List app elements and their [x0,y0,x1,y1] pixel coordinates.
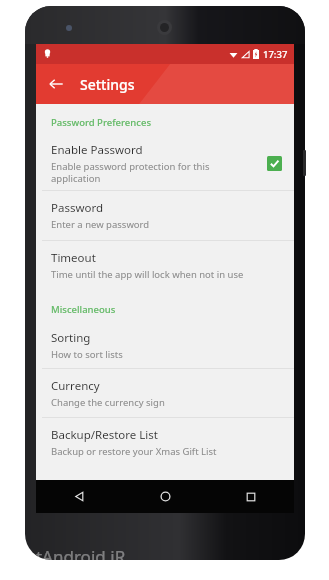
button[interactable]: Timeout [36,241,294,290]
staticText: Currency [51,378,100,394]
staticText: Sorting [51,330,91,346]
staticText: Backup or restore your Xmas Gift List [51,445,217,458]
button[interactable]: Currency [36,369,294,417]
button[interactable]: Recent apps [208,480,294,513]
button[interactable]: Password [36,191,294,240]
staticText: Settings [80,75,135,94]
staticText: GetAndroid.iR [14,545,126,568]
staticText: Change the currency sign [51,396,165,409]
staticText: Enable Password [51,142,143,158]
staticText: Enable password protection for this appl… [51,160,210,185]
button[interactable]: Backup/Restore List [36,418,294,466]
staticText: Timeout [51,250,96,266]
button[interactable]: Home [122,480,208,513]
staticText: Miscellaneous [51,303,116,316]
staticText: Enter a new password [51,218,150,231]
button[interactable]: Enable Password [36,136,294,190]
staticText: How to sort lists [51,348,123,361]
staticText: Password Preferences [51,116,152,129]
staticText: Time until the app will lock when not in… [51,268,244,281]
staticText: Backup/Restore List [51,427,158,443]
button[interactable]: Back [36,480,122,513]
staticText: 17:37 [263,48,288,61]
staticText: Password [51,200,104,216]
button[interactable]: Enable Password toggle [267,156,282,171]
button[interactable]: Back [36,64,76,104]
button[interactable]: Sorting [36,323,294,368]
